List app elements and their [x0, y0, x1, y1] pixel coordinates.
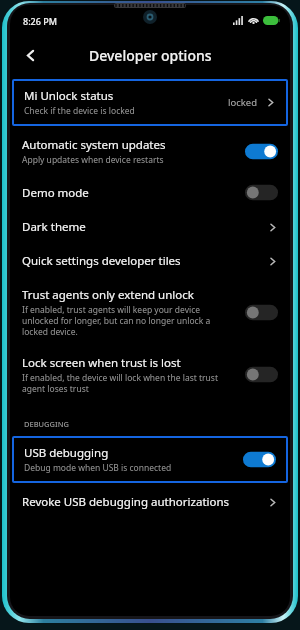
- staticText: Mi Unlock status: [24, 88, 114, 104]
- button[interactable]: Toggle on: [243, 451, 276, 468]
- button[interactable]: USB debugging: [12, 436, 288, 483]
- staticText: Trust agents only extend unlock: [22, 287, 194, 303]
- staticText: Lock screen when trust is lost: [22, 355, 181, 371]
- button[interactable]: Lock screen when trust is lost: [10, 346, 290, 403]
- staticText: Check if the device is locked: [24, 105, 135, 117]
- staticText: Automatic system updates: [22, 137, 166, 153]
- button[interactable]: Revoke USB debugging authorizations: [10, 485, 290, 519]
- button[interactable]: Toggle off: [245, 304, 278, 321]
- button[interactable]: Toggle off: [245, 184, 278, 201]
- button[interactable]: Back: [14, 39, 46, 71]
- staticText: Demo mode: [22, 185, 89, 201]
- button[interactable]: Mi Unlock status: [12, 79, 288, 126]
- button[interactable]: Quick settings developer tiles: [10, 244, 290, 278]
- staticText: If enabled, the device will lock when th…: [22, 372, 237, 394]
- button[interactable]: Toggle on: [245, 143, 278, 160]
- button[interactable]: Toggle off: [245, 366, 278, 383]
- staticText: Developer options: [89, 46, 212, 65]
- staticText: USB debugging: [24, 445, 109, 461]
- staticText: Debug mode when USB is connected: [24, 462, 172, 474]
- staticText: Quick settings developer tiles: [22, 253, 181, 269]
- button[interactable]: Dark theme: [10, 210, 290, 244]
- staticText: 8:26 PM: [23, 15, 57, 27]
- staticText: Revoke USB debugging authorizations: [22, 494, 230, 510]
- button[interactable]: Trust agents only extend unlock: [10, 278, 290, 346]
- button[interactable]: Demo mode: [10, 175, 290, 210]
- staticText: If enabled, trust agents will keep your …: [22, 304, 237, 337]
- staticText: locked: [228, 96, 258, 109]
- staticText: DEBUGGING: [24, 419, 69, 429]
- staticText: Apply updates when device restarts: [22, 154, 164, 166]
- button[interactable]: Automatic system updates: [10, 128, 290, 175]
- staticText: Dark theme: [22, 219, 86, 235]
